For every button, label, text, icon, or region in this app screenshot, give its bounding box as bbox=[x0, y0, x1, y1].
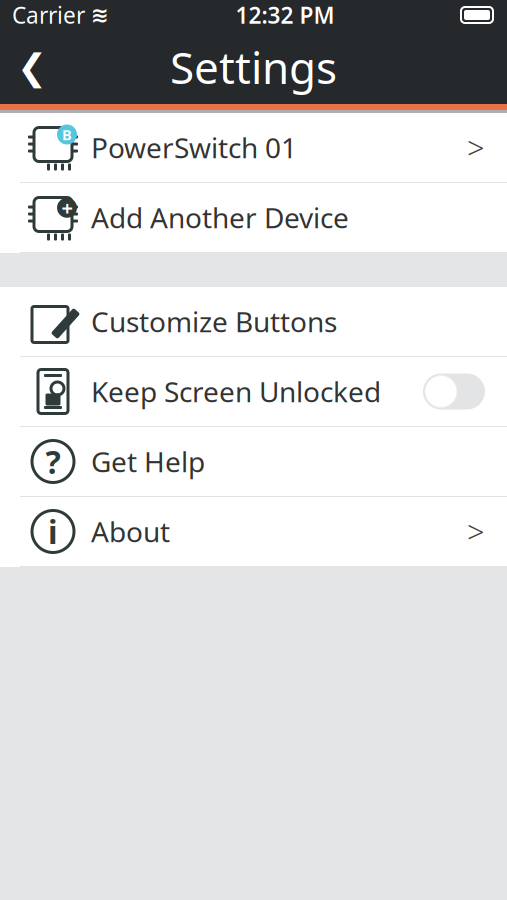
button[interactable]: Back bbox=[0, 37, 64, 97]
staticText: Add Another Device bbox=[91, 199, 349, 236]
staticText: PowerSwitch 01 bbox=[91, 129, 297, 166]
button[interactable]: ? bbox=[0, 427, 507, 497]
staticText: ? bbox=[45, 440, 60, 483]
staticText: > bbox=[467, 127, 485, 168]
button[interactable]: i bbox=[0, 497, 507, 567]
staticText: Keep Screen Unlocked bbox=[91, 373, 381, 410]
staticText: Get Help bbox=[91, 443, 205, 480]
staticText: Carrier bbox=[12, 0, 85, 30]
staticText: > bbox=[467, 511, 485, 552]
staticText: B bbox=[62, 125, 72, 144]
staticText: ≋ bbox=[91, 3, 109, 27]
button[interactable]: + bbox=[0, 183, 507, 253]
button[interactable]: Customize Buttons bbox=[0, 287, 507, 357]
staticText: + bbox=[61, 194, 72, 221]
staticText: 12:32 PM bbox=[235, 0, 334, 30]
staticText: i bbox=[48, 510, 58, 553]
staticText: ❮ bbox=[17, 47, 47, 87]
button[interactable]: Keep Screen Unlocked bbox=[423, 373, 485, 409]
button[interactable]: Keep Screen Unlocked bbox=[0, 357, 507, 427]
button[interactable]: B bbox=[0, 113, 507, 183]
staticText: Settings bbox=[170, 38, 337, 96]
staticText: About bbox=[91, 513, 170, 550]
staticText: Customize Buttons bbox=[91, 303, 337, 340]
